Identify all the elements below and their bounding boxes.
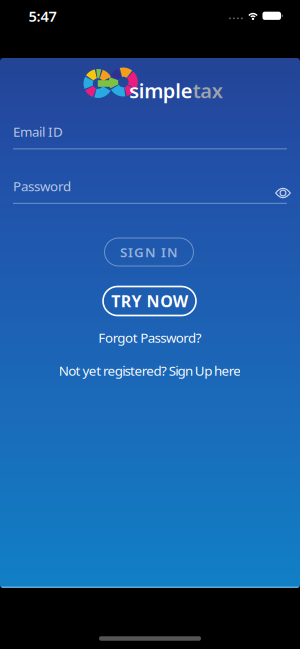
staticText: Not yet registered? Sign Up here (59, 362, 241, 379)
staticText: Email ID (13, 123, 63, 140)
staticText: Password (13, 177, 71, 195)
button[interactable]: Not yet registered? Sign Up here (59, 362, 241, 379)
button[interactable]: Forgot Password? (98, 329, 202, 346)
button[interactable]: TRY NOW (103, 286, 196, 315)
staticText: TRY NOW (111, 290, 188, 312)
button[interactable]: Show password (275, 187, 291, 198)
staticText: 5:47 (28, 6, 56, 26)
button[interactable]: Email ID (13, 123, 287, 149)
staticText: tax (193, 77, 223, 104)
button[interactable]: SIGN IN (104, 238, 193, 266)
staticText: simple (129, 77, 193, 104)
staticText: SIGN IN (120, 243, 178, 261)
staticText: Forgot Password? (98, 329, 202, 346)
button[interactable]: Password (13, 177, 287, 204)
